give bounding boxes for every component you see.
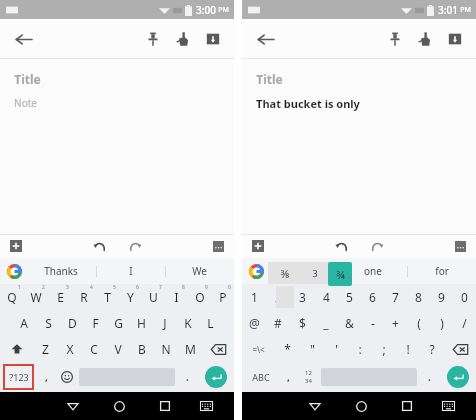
button[interactable]: Back [292,392,338,420]
button[interactable]: W [24,284,48,310]
button[interactable]: . [177,364,198,390]
button[interactable]: 5 [338,284,361,310]
button[interactable]: Emoji [56,364,77,390]
button[interactable]: Archive [440,24,470,54]
button[interactable]: & [338,310,361,336]
button[interactable]: Pin [380,24,410,54]
button[interactable]: O [188,284,211,310]
button[interactable]: ; [372,336,396,362]
button[interactable] [268,258,338,284]
button[interactable]: More options [208,236,228,256]
button[interactable]: V [106,336,130,362]
button[interactable]: Reminder [168,24,198,54]
button[interactable]: P [211,284,234,310]
button[interactable]: Back [250,24,280,54]
button[interactable]: 8 [407,284,430,310]
button[interactable]: Q [0,284,24,310]
button[interactable]: _ [314,310,338,336]
button[interactable]: U [142,284,165,310]
button[interactable]: ?123 [3,364,34,390]
button[interactable]: I [165,284,188,310]
button[interactable]: Undo [330,235,352,257]
button[interactable]: 0 [453,284,476,310]
button[interactable]: E [48,284,72,310]
button[interactable]: Undo [88,235,110,257]
button[interactable]: Numbers [298,364,319,390]
button[interactable]: A [12,310,36,336]
button[interactable]: Delete [444,336,476,362]
button[interactable]: 2 [266,284,290,310]
button[interactable]: Enter [447,366,469,388]
button[interactable]: , [37,364,56,390]
button[interactable]: Y [119,284,142,310]
button[interactable]: ( [407,310,430,336]
button[interactable]: More options [450,236,470,256]
button[interactable]: : [348,336,372,362]
button[interactable]: Home [96,392,142,420]
button[interactable]: for [407,258,476,284]
button[interactable]: ? [420,336,444,362]
button[interactable]: Redo [366,235,388,257]
button[interactable]: D [60,310,84,336]
button[interactable]: T [96,284,119,310]
button[interactable]: Recents [384,392,430,420]
button[interactable]: Archive [198,24,228,54]
button[interactable]: * [275,336,300,362]
button[interactable]: Add [6,236,26,256]
button[interactable]: Pin [138,24,168,54]
button[interactable]: Back [8,24,38,54]
button[interactable]: $ [290,310,314,336]
button[interactable]: / [453,310,476,336]
button[interactable]: 3 [290,284,314,310]
button[interactable]: J [153,310,176,336]
button[interactable]: B [130,336,154,362]
button[interactable]: 4 [314,284,338,310]
button[interactable]: H [130,310,153,336]
button[interactable]: F [84,310,107,336]
button[interactable]: - [361,310,384,336]
button[interactable]: 9 [430,284,453,310]
button[interactable]: Thanks [26,258,96,284]
button[interactable]: 6 [361,284,384,310]
button[interactable]: Switch keyboard [430,392,467,420]
button[interactable]: Delete [202,336,234,362]
button[interactable]: one [338,258,407,284]
button[interactable]: Enter [205,366,227,388]
button[interactable]: M [178,336,202,362]
button[interactable]: Z [33,336,58,362]
button[interactable]: I [96,258,165,284]
button[interactable]: C [82,336,106,362]
button[interactable]: . [419,364,440,390]
button[interactable]: S [36,310,60,336]
button[interactable]: Reminder [410,24,440,54]
button[interactable]: R [72,284,96,310]
button[interactable]: 7 [384,284,407,310]
button[interactable]: ) [430,310,453,336]
button[interactable]: We [165,258,234,284]
button[interactable]: @ [242,310,266,336]
button[interactable]: ' [324,336,348,362]
button[interactable]: Back [50,392,96,420]
button[interactable]: G [107,310,130,336]
button[interactable]: L [199,310,222,336]
staticText: 0 [228,284,231,291]
button[interactable]: X [58,336,82,362]
button[interactable]: " [300,336,324,362]
button[interactable]: 1 [242,284,266,310]
button[interactable]: ! [396,336,420,362]
button[interactable]: Redo [124,235,146,257]
button[interactable]: # [266,310,290,336]
button[interactable]: , [279,364,298,390]
button[interactable]: Add [248,236,268,256]
button[interactable]: Switch keyboard [188,392,225,420]
button[interactable]: Recents [142,392,188,420]
button[interactable]: K [176,310,199,336]
button[interactable]: Home [338,392,384,420]
button[interactable]: N [154,336,178,362]
button[interactable]: ABC [245,364,276,390]
button[interactable]: + [384,310,407,336]
button[interactable]: =\< [242,336,275,362]
button[interactable]: Shift [0,336,33,362]
